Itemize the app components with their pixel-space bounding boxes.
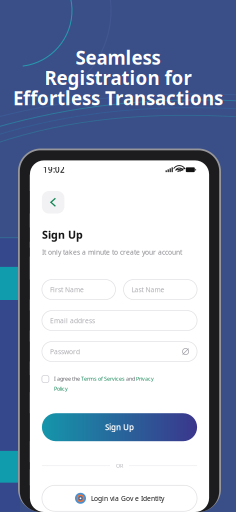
button[interactable]: Sign Up bbox=[42, 413, 197, 441]
staticText: OR bbox=[116, 462, 123, 469]
staticText: It only takes a minute to create your ac… bbox=[42, 248, 182, 257]
staticText: Privacy bbox=[136, 375, 154, 382]
staticText: Sign Up bbox=[42, 227, 83, 242]
staticText: Sign Up bbox=[105, 422, 134, 432]
staticText: Terms of Services bbox=[81, 375, 125, 382]
button[interactable]: Back bbox=[42, 191, 64, 213]
staticText: Effortless Transactions bbox=[13, 86, 223, 110]
button[interactable]: Login via Gov e Identity bbox=[42, 485, 197, 511]
staticText: 19:02 bbox=[43, 164, 65, 175]
button[interactable]: Agree to terms bbox=[42, 375, 49, 382]
staticText: First Name bbox=[50, 285, 84, 294]
staticText: and bbox=[125, 375, 136, 382]
staticText: Login via Gov e Identity bbox=[91, 494, 164, 503]
staticText: Seamless bbox=[75, 45, 160, 70]
staticText: Password bbox=[50, 347, 80, 356]
staticText: Email address bbox=[50, 316, 95, 325]
staticText: Registration for bbox=[44, 65, 191, 90]
staticText: I agree the bbox=[54, 375, 81, 382]
staticText: Policy bbox=[54, 385, 68, 392]
staticText: Last Name bbox=[131, 285, 164, 294]
